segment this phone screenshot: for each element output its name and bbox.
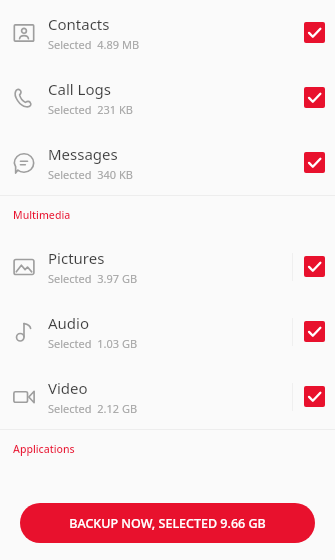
staticText: Selected 3.97 GB [48,271,138,286]
button[interactable]: Messages [0,130,335,195]
button[interactable]: Toggle Contacts [293,0,335,65]
staticText: Messages [48,144,118,164]
button[interactable]: Call Logs [0,65,335,130]
button[interactable]: Toggle Pictures [293,234,335,299]
staticText: Video [48,378,88,398]
button[interactable]: Video [0,364,335,429]
staticText: Audio [48,313,90,333]
staticText: Selected 1.03 GB [48,336,138,351]
staticText: Selected 2.12 GB [48,401,138,416]
staticText: Selected 231 KB [48,102,133,117]
staticText: Multimedia [13,208,71,222]
staticText: Applications [13,442,75,456]
button[interactable]: Toggle Audio [293,299,335,364]
button[interactable]: Audio [0,299,335,364]
staticText: Contacts [48,14,110,34]
staticText: Pictures [48,248,105,268]
button[interactable]: Toggle Call Logs [293,65,335,130]
staticText: Call Logs [48,79,111,99]
button[interactable]: Toggle Messages [293,130,335,195]
button[interactable]: Pictures [0,234,335,299]
button[interactable]: Toggle Video [293,364,335,429]
button[interactable]: BACKUP NOW, SELECTED 9.66 GB [20,503,315,543]
button[interactable]: Contacts [0,0,335,65]
staticText: BACKUP NOW, SELECTED 9.66 GB [69,515,266,532]
staticText: Selected 4.89 MB [48,37,140,52]
staticText: Selected 340 KB [48,167,133,182]
